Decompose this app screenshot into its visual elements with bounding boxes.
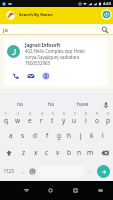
staticText: 5 (52, 112, 54, 116)
button[interactable]: 7 (69, 110, 80, 127)
button[interactable]: 1 (0, 110, 12, 127)
button[interactable]: ja (0, 24, 113, 35)
staticText: s (21, 131, 25, 140)
staticText: y (62, 116, 66, 125)
staticText: p (106, 116, 110, 125)
button[interactable]: 5 (47, 110, 58, 127)
staticText: e (28, 116, 32, 125)
button[interactable]: Search (99, 24, 110, 35)
button[interactable]: Logout (100, 7, 113, 22)
staticText: Search By Name (19, 12, 53, 18)
button[interactable]: g (53, 127, 64, 144)
staticText: 2 (17, 112, 19, 116)
staticText: na (17, 101, 23, 108)
staticText: 4:40 (103, 1, 111, 6)
button[interactable]: d (29, 127, 41, 144)
staticText: ja (3, 26, 8, 34)
button[interactable]: Website (40, 70, 52, 82)
staticText: Jagruti Infosoft (25, 42, 61, 48)
staticText: h (67, 131, 72, 140)
button[interactable]: Hide keyboard (88, 181, 113, 200)
staticText: c (45, 148, 49, 157)
button[interactable]: Call (10, 70, 22, 82)
staticText: n (77, 148, 82, 157)
button[interactable]: j (75, 127, 86, 144)
staticText: o (95, 116, 99, 125)
button[interactable]: Back (14, 181, 38, 200)
button[interactable]: Email (25, 70, 37, 82)
staticText: 0 (107, 112, 109, 116)
staticText: u (72, 116, 77, 125)
button[interactable]: ha (35, 99, 67, 110)
button[interactable]: ?123 (0, 161, 17, 181)
staticText: surya,Sayajigunj vadodara (25, 54, 80, 60)
staticText: t (51, 116, 54, 125)
button[interactable]: Voice input (99, 99, 113, 110)
staticText: z (22, 148, 26, 157)
staticText: r (40, 116, 43, 125)
button[interactable]: Jagruti Infosoft (4, 38, 108, 86)
staticText: 7 (74, 112, 76, 116)
staticText: g (57, 131, 61, 140)
button[interactable]: v (52, 144, 63, 161)
staticText: j (80, 131, 82, 140)
staticText: k (90, 131, 94, 140)
button[interactable]: Emoji (28, 161, 37, 181)
staticText: a (9, 131, 13, 140)
staticText: v (56, 148, 60, 157)
button[interactable]: na (4, 99, 35, 110)
button[interactable]: Enter (94, 161, 113, 181)
button[interactable]: 6 (58, 110, 69, 127)
button[interactable]: 3 (24, 110, 36, 127)
staticText: x (34, 148, 38, 157)
button[interactable]: Backspace (96, 144, 113, 161)
staticText: ?123 (4, 168, 14, 174)
button[interactable]: c (41, 144, 52, 161)
button[interactable]: have (67, 99, 99, 110)
staticText: 3 (29, 112, 31, 116)
button[interactable]: 8 (80, 110, 91, 127)
button[interactable]: f (41, 127, 53, 144)
staticText: ha (48, 101, 54, 108)
staticText: m (87, 148, 94, 157)
button[interactable]: 9 (91, 110, 102, 127)
staticText: f (46, 131, 49, 140)
staticText: have (77, 101, 89, 108)
staticText: 9 (96, 112, 98, 116)
button[interactable]: x (30, 144, 41, 161)
button[interactable]: App logo (4, 9, 16, 21)
button[interactable]: n (74, 144, 85, 161)
staticText: 6 (63, 112, 65, 116)
button[interactable]: a (5, 127, 17, 144)
staticText: 402,Helix Complex,opp Hotel (25, 48, 85, 54)
staticText: q (4, 116, 8, 125)
staticText: d (33, 131, 37, 140)
button[interactable]: Shift (0, 144, 18, 161)
button[interactable]: k (86, 127, 97, 144)
button[interactable]: s (17, 127, 29, 144)
button[interactable]: Recents (63, 181, 88, 200)
staticText: 4 (41, 112, 43, 116)
button[interactable]: l (97, 127, 108, 144)
button[interactable]: . (85, 161, 94, 181)
button[interactable]: z (18, 144, 30, 161)
staticText: 8 (85, 112, 87, 116)
staticText: . (89, 167, 91, 175)
staticText: 7600552983 (25, 60, 51, 66)
button[interactable]: b (63, 144, 74, 161)
staticText: i (85, 116, 87, 125)
button[interactable]: Home (38, 181, 63, 200)
button[interactable]: 4 (36, 110, 47, 127)
staticText: b (67, 148, 71, 157)
button[interactable]: 0 (102, 110, 113, 127)
staticText: , (22, 167, 24, 175)
button[interactable]: 2 (12, 110, 24, 127)
button[interactable]: , (17, 161, 28, 181)
button[interactable]: m (85, 144, 96, 161)
button[interactable]: h (64, 127, 75, 144)
staticText: 1 (5, 112, 7, 116)
staticText: w (15, 116, 21, 125)
staticText: l (102, 131, 104, 140)
